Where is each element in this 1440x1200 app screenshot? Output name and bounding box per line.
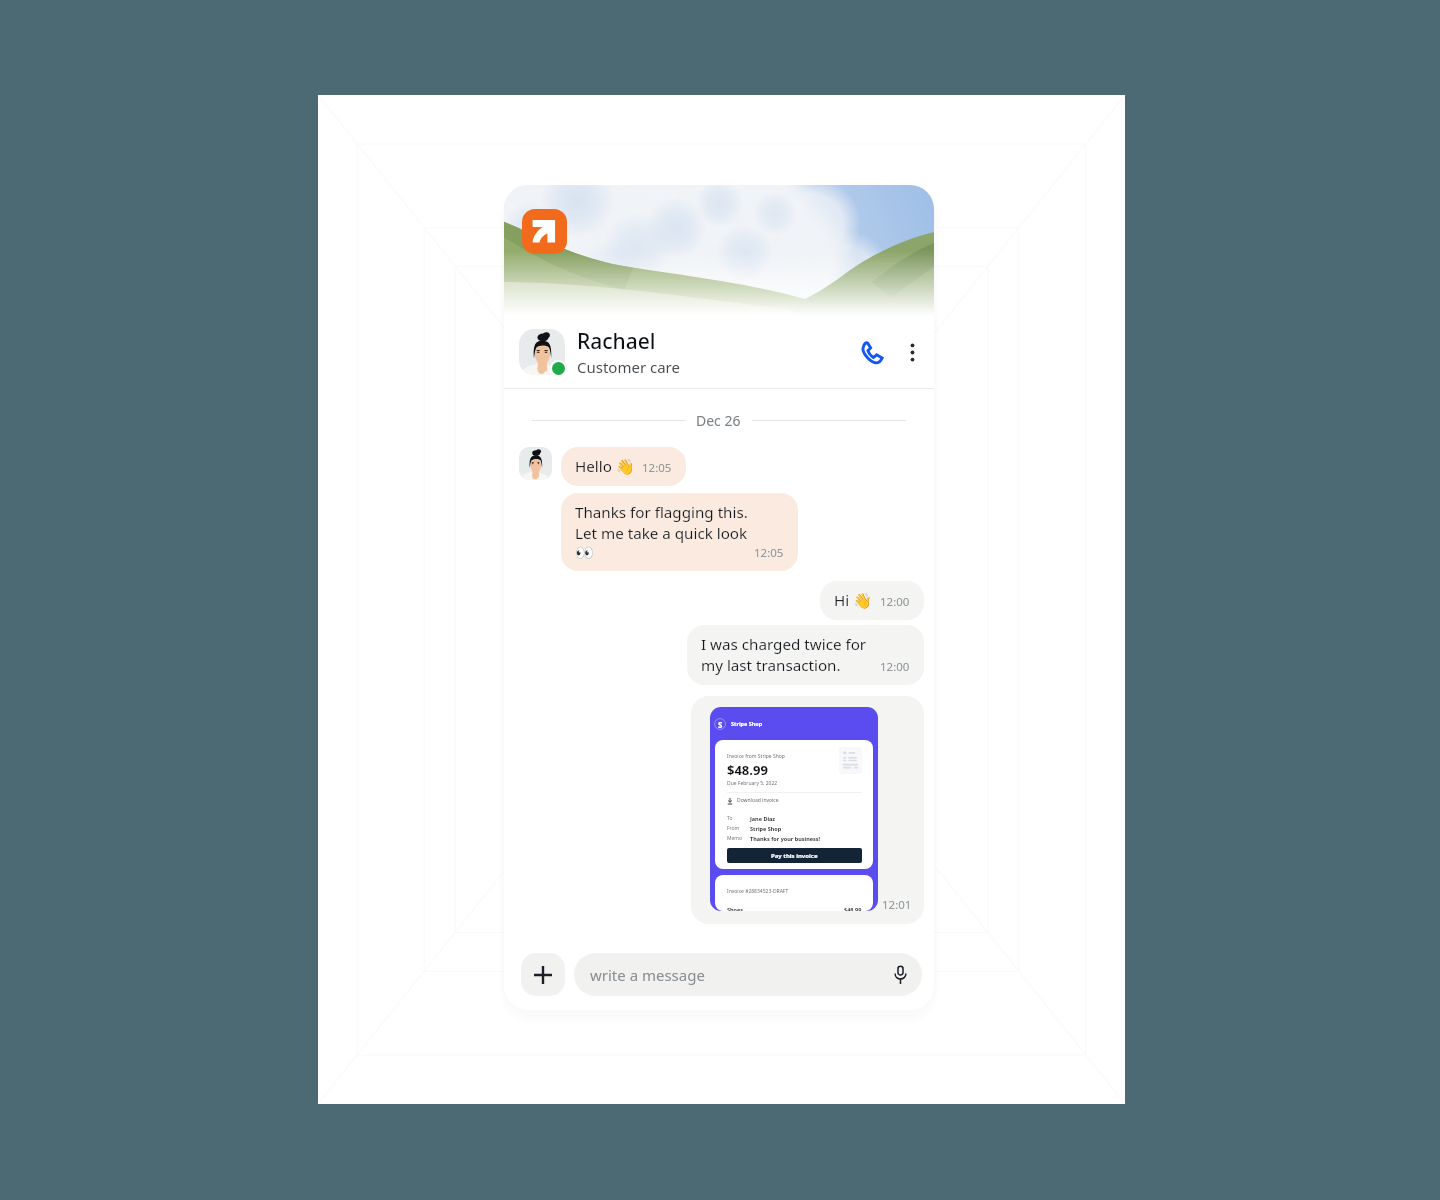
staticText: Thanks for your business! [750, 835, 821, 842]
staticText: $48.99 [727, 761, 768, 779]
staticText: Thanks for flagging this. [575, 502, 748, 523]
staticText: Customer care [577, 357, 680, 377]
staticText: Stripe Shop [750, 825, 782, 832]
button[interactable]: Call [853, 333, 891, 371]
staticText: To [727, 815, 750, 822]
staticText: Download invoice [737, 797, 779, 804]
staticText: 12:00 [880, 594, 910, 610]
button[interactable]: Add attachment [521, 953, 565, 996]
staticText: Shoes [727, 906, 744, 911]
staticText: From [727, 825, 750, 832]
staticText: write a message [590, 965, 705, 985]
staticText: $48.99 [844, 906, 862, 911]
staticText: 12:01 [882, 897, 912, 913]
staticText: 12:05 [642, 460, 672, 476]
staticText: Rachael [577, 327, 656, 356]
staticText: Memo [727, 835, 750, 842]
staticText: Hi 👋 [834, 590, 873, 611]
button[interactable]: write a message [574, 953, 922, 996]
staticText: Hello 👋 [575, 456, 635, 477]
staticText: Invoice from Stripe Shop [727, 753, 785, 760]
staticText: 12:05 [754, 545, 784, 561]
staticText: Dec 26 [696, 411, 741, 430]
staticText: Pay this invoice [771, 852, 818, 860]
staticText: 12:00 [880, 659, 910, 675]
button[interactable]: Hi 👋 [820, 581, 924, 620]
staticText: Stripe Shop [731, 720, 763, 727]
button[interactable]: Hello 👋 [561, 447, 686, 486]
staticText: 👀 [575, 544, 594, 562]
staticText: Due February 5, 2022 [727, 780, 778, 787]
button[interactable]: Rachael [504, 316, 934, 388]
button[interactable]: Voice message [893, 966, 908, 984]
staticText: Let me take a quick look [575, 523, 748, 544]
button[interactable]: I was charged twice for [687, 625, 924, 685]
staticText: my last transaction. [701, 655, 841, 676]
button[interactable]: S [691, 696, 924, 924]
staticText: Invoice #28834523-DRAFT [727, 888, 789, 895]
button[interactable]: Thanks for flagging this. [561, 493, 798, 571]
button[interactable]: More options [896, 336, 928, 368]
button[interactable]: App logo [522, 209, 567, 254]
staticText: I was charged twice for [701, 634, 867, 655]
staticText: Jane Diaz [750, 815, 776, 822]
staticText: S [718, 719, 723, 730]
button[interactable]: Pay this invoice [727, 848, 862, 863]
